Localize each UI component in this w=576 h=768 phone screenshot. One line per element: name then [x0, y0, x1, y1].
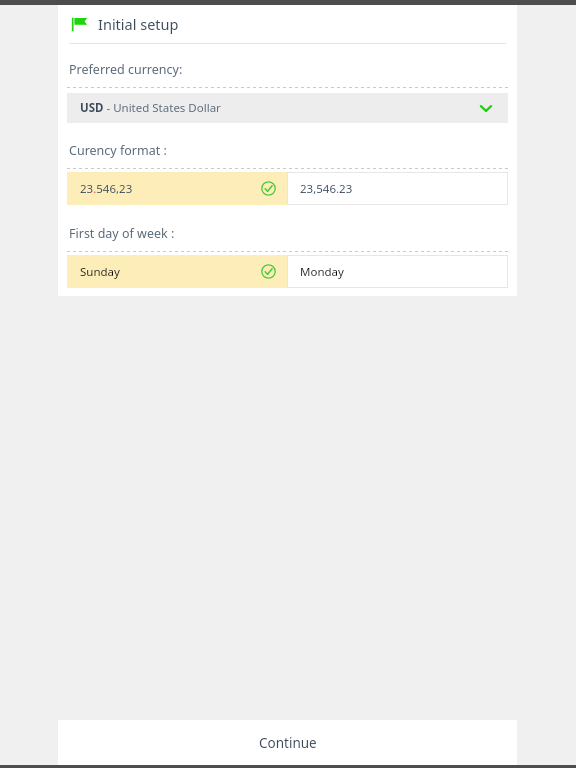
- other: Expand: [478, 100, 494, 116]
- staticText: USD - United States Dollar: [80, 100, 221, 116]
- staticText: 23.546,23: [80, 181, 133, 197]
- other: Flag: [71, 16, 88, 33]
- button[interactable]: Sunday: [67, 255, 287, 288]
- staticText: Preferred currency:: [69, 61, 183, 78]
- staticText: Monday: [300, 264, 344, 280]
- staticText: Curency format :: [69, 142, 167, 159]
- button[interactable]: Monday: [287, 255, 508, 288]
- button[interactable]: Continue: [58, 720, 517, 765]
- button[interactable]: USD - United States Dollar: [67, 93, 508, 123]
- button[interactable]: 23,546.23: [287, 172, 508, 205]
- other: Selected: [261, 264, 276, 279]
- staticText: Continue: [259, 734, 317, 752]
- button[interactable]: Flag: [58, 5, 517, 43]
- button[interactable]: 23.546,23: [67, 172, 287, 205]
- staticText: Sunday: [80, 264, 120, 280]
- staticText: 23,546.23: [300, 181, 353, 197]
- other: Selected: [261, 181, 276, 196]
- staticText: First day of week :: [69, 225, 175, 242]
- staticText: Initial setup: [98, 14, 179, 34]
